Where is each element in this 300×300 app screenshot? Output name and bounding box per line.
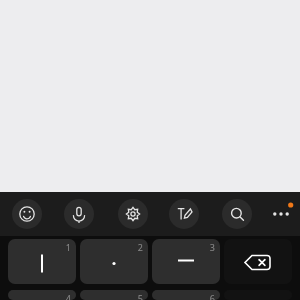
staticText: 6: [209, 292, 215, 300]
button[interactable]: Handwriting: [169, 199, 199, 229]
staticText: 5: [137, 292, 143, 300]
button[interactable]: Backspace: [224, 239, 292, 284]
button[interactable]: 6: [152, 290, 220, 300]
button[interactable]: More options: [265, 198, 297, 230]
button[interactable]: Emoji: [12, 199, 42, 229]
button[interactable]: 5: [80, 290, 148, 300]
staticText: 2: [137, 241, 143, 253]
staticText: 4: [65, 292, 71, 300]
staticText: 1: [65, 241, 71, 253]
button[interactable]: 2: [80, 239, 148, 284]
button[interactable]: Settings: [118, 199, 148, 229]
button[interactable]: Search: [222, 199, 252, 229]
button[interactable]: Voice input: [64, 199, 94, 229]
button[interactable]: 4: [8, 290, 76, 300]
button[interactable]: 3: [152, 239, 220, 284]
staticText: 3: [209, 241, 215, 253]
button[interactable]: 1: [8, 239, 76, 284]
